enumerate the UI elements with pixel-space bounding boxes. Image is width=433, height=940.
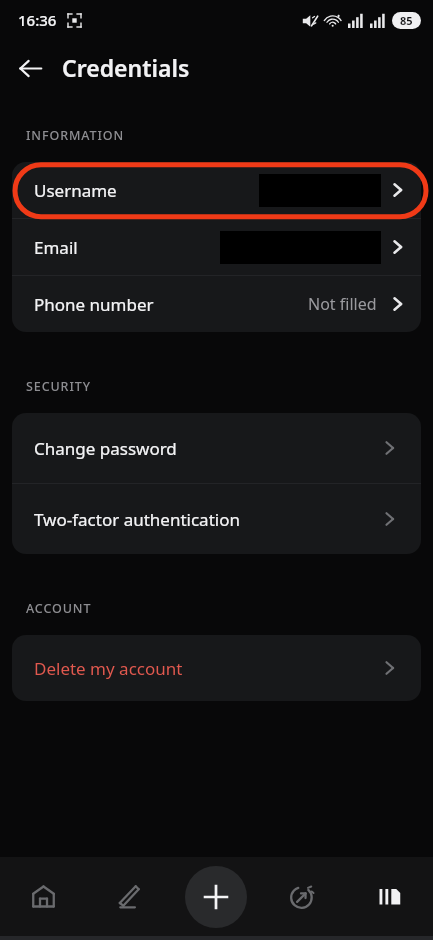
button[interactable]: Statistics [259,857,346,936]
button[interactable]: Back [8,46,52,90]
button[interactable]: Email [12,219,421,275]
staticText: 85 [400,13,413,28]
staticText: Change password [34,437,177,460]
button[interactable]: Home [0,857,86,936]
staticText: 16:36 [18,10,57,30]
button[interactable]: Change password [12,413,421,483]
staticText: ACCOUNT [26,600,92,617]
staticText: Phone number [34,293,154,316]
button[interactable]: Phone number [12,276,421,332]
button[interactable]: Delete my account [12,635,421,701]
staticText: Email [34,236,78,259]
button[interactable]: Write [86,857,172,936]
staticText: SECURITY [26,378,91,395]
staticText: Two-factor authentication [34,508,240,531]
staticText: Username [34,179,117,202]
button[interactable]: Library [346,857,433,936]
staticText: Delete my account [34,657,183,680]
button[interactable]: Username [12,162,421,218]
staticText: Credentials [62,52,190,83]
button[interactable]: Two-factor authentication [12,484,421,554]
staticText: INFORMATION [26,127,125,144]
button[interactable]: Add [172,857,259,936]
staticText: Not filled [308,293,377,315]
